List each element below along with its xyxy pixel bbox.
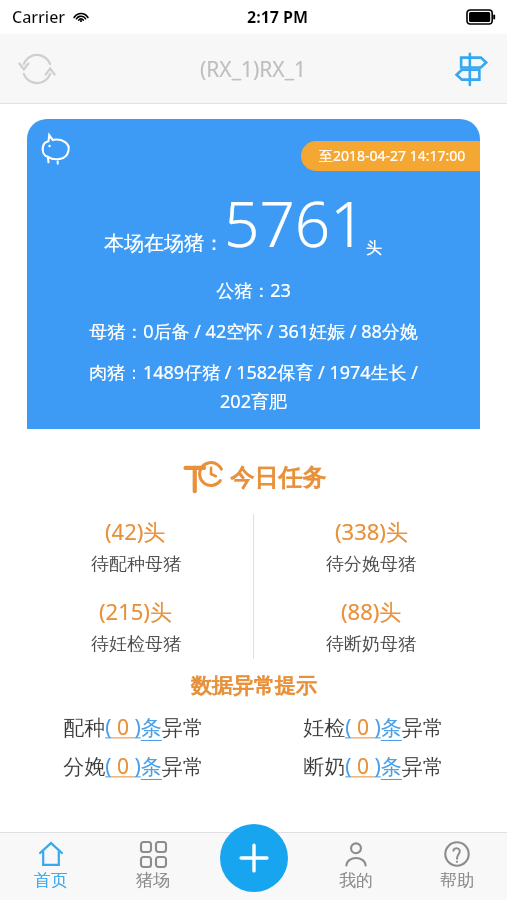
staticText: 配种( 0 )条异常 [63,713,204,742]
staticText: 首页 [34,870,68,891]
staticText: 今日任务 [230,463,326,493]
button[interactable]: Navigation signpost [447,45,495,93]
button[interactable]: 分娩( 0 )条异常 [14,752,253,781]
staticText: 肉猪：1489仔猪 / 1582保育 / 1974生长 / 202育肥 [73,360,434,413]
staticText: 帮助 [440,870,474,891]
button[interactable]: (338)头 [253,514,489,578]
button[interactable]: Add [220,824,288,892]
staticText: (88)头 [341,596,402,626]
button[interactable]: 配种( 0 )条异常 [14,713,253,742]
button[interactable]: 妊检( 0 )条异常 [253,713,493,742]
button[interactable]: 首页 [0,832,102,900]
staticText: 待配种母猪 [91,553,181,576]
staticText: 待妊检母猪 [91,633,181,656]
button[interactable]: (215)头 [18,594,253,658]
staticText: 母猪：0后备 / 42空怀 / 361妊娠 / 88分娩 [33,319,474,344]
button[interactable]: (88)头 [253,594,489,658]
staticText: 待断奶母猪 [326,633,416,656]
staticText: (215)头 [99,596,172,626]
button[interactable]: 我的 [305,832,406,900]
button[interactable]: 猪场 [102,832,204,900]
staticText: Carrier [12,6,66,28]
button[interactable]: Refresh [14,46,60,92]
staticText: (RX_1)RX_1 [200,55,307,84]
button[interactable]: 断奶( 0 )条异常 [253,752,493,781]
staticText: 公猪：23 [27,278,480,303]
button[interactable]: 帮助 [406,832,507,900]
staticText: 本场在场猪： [104,231,224,256]
staticText: (338)头 [335,516,408,546]
staticText: 猪场 [136,870,170,891]
staticText: 至2018-04-27 14:17:00 [319,146,466,165]
staticText: 我的 [339,870,373,891]
button[interactable]: (42)头 [18,514,253,578]
staticText: 数据异常提示 [0,673,507,699]
staticText: 断奶( 0 )条异常 [303,752,444,781]
staticText: (42)头 [105,516,166,546]
staticText: 5761 [224,181,366,265]
staticText: 2:17 PM [247,6,309,28]
staticText: 分娩( 0 )条异常 [63,752,204,781]
staticText: 头 [366,238,382,258]
staticText: 妊检( 0 )条异常 [303,713,444,742]
button[interactable]: 至2018-04-27 14:17:00 [27,119,480,429]
staticText: 待分娩母猪 [326,553,416,576]
